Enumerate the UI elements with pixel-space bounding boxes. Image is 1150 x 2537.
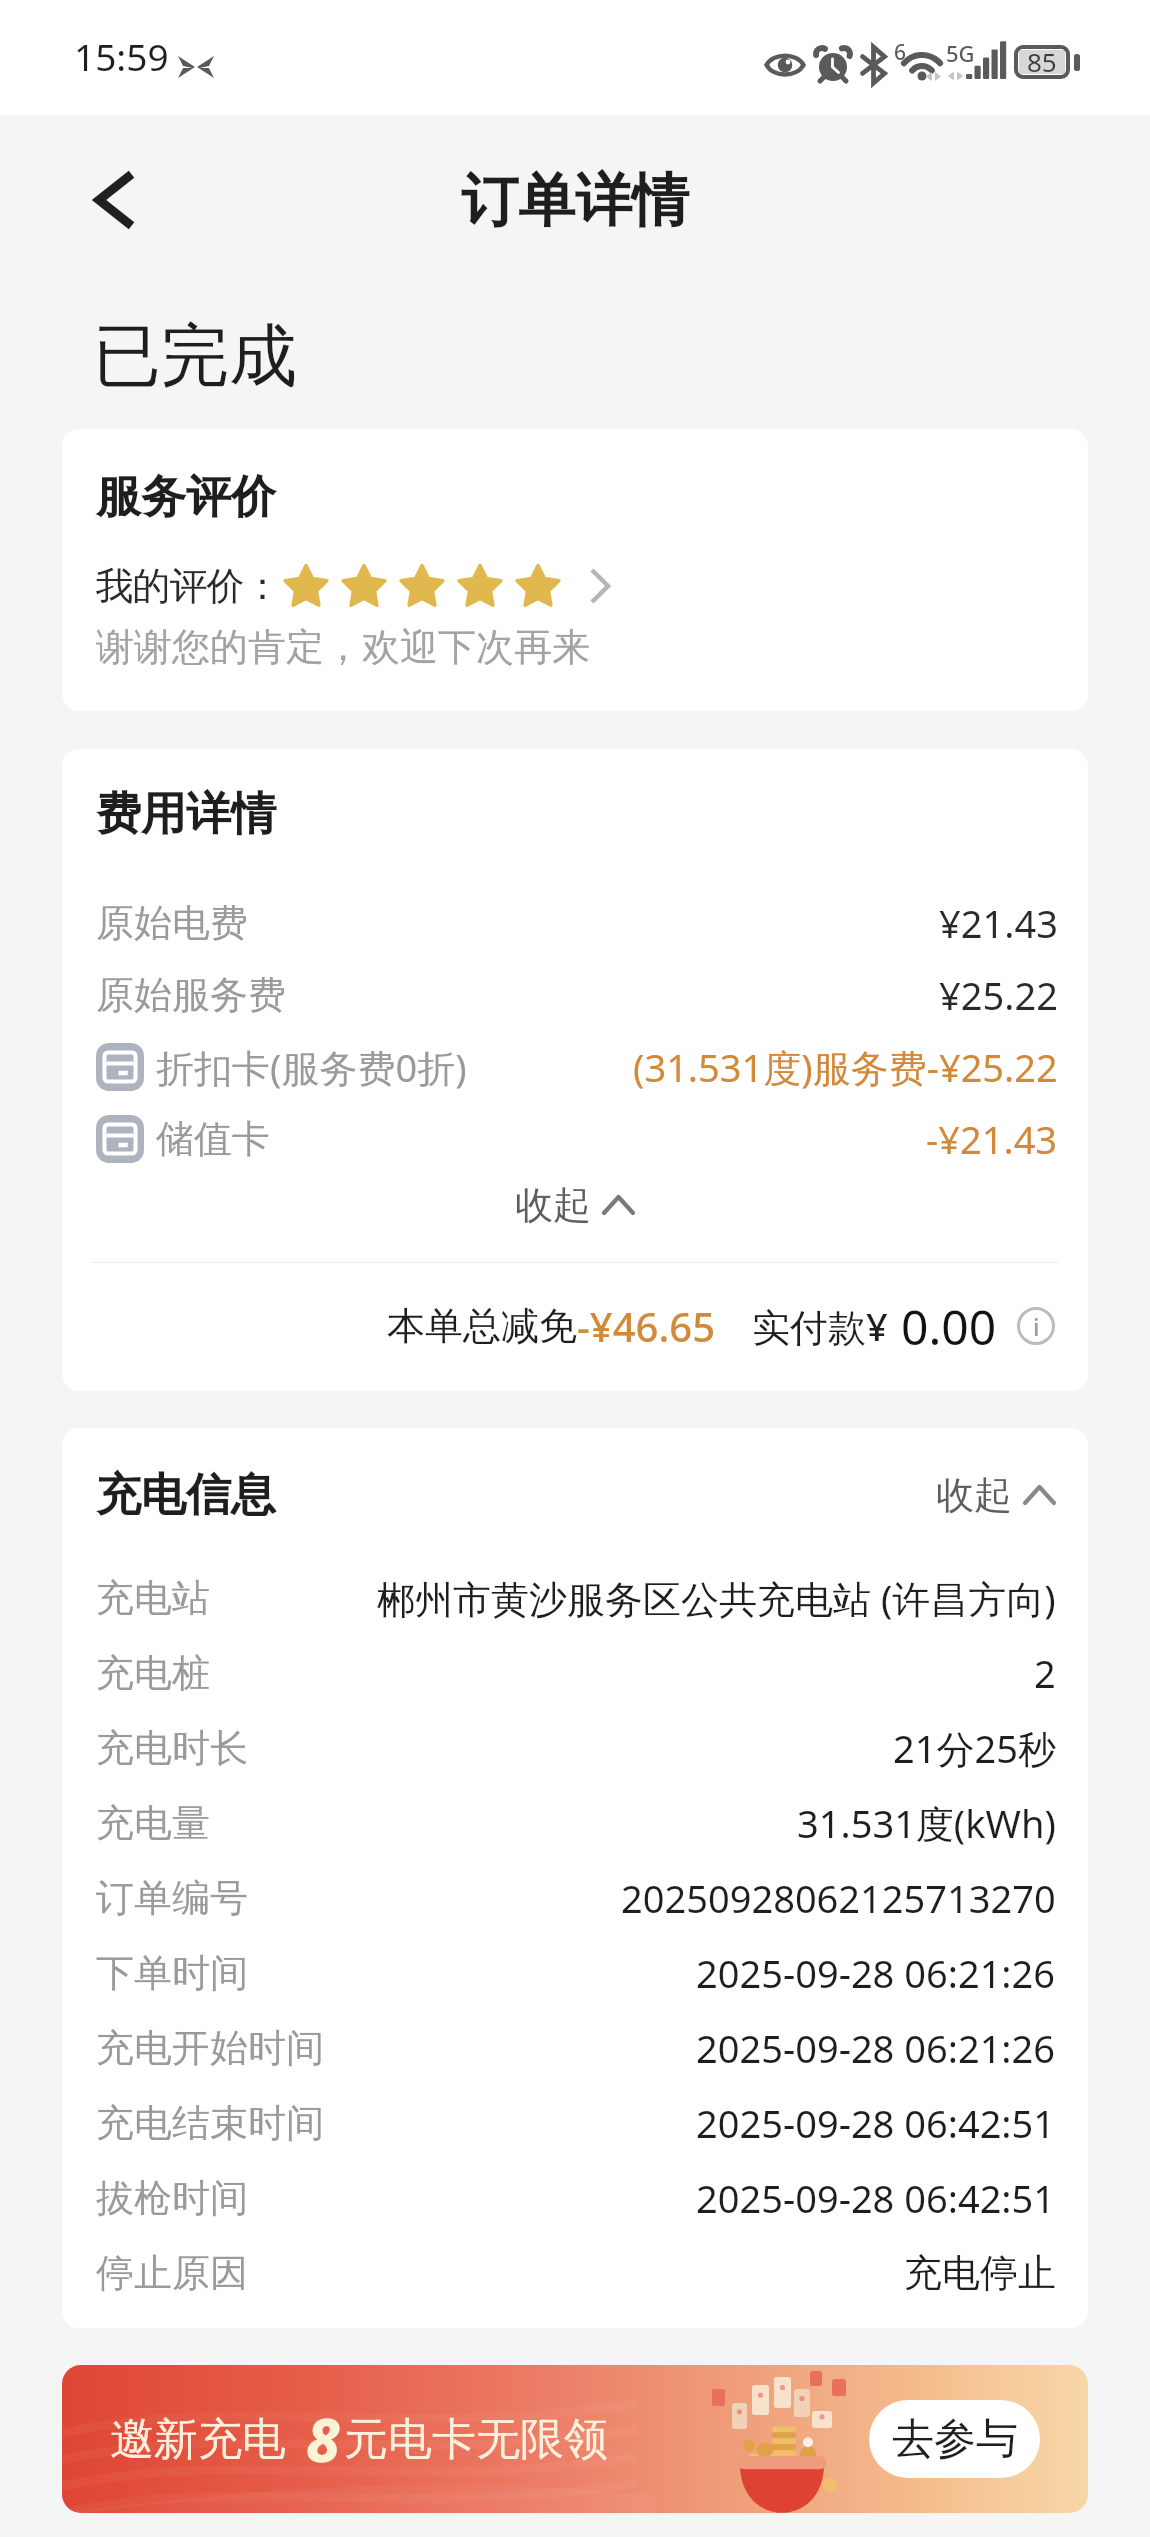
staticText: 下单时间 bbox=[96, 1949, 248, 1997]
staticText: 谢谢您的肯定，欢迎下次再来 bbox=[96, 623, 590, 671]
staticText: 15:59 bbox=[74, 31, 169, 81]
staticText: ¥21.43 bbox=[939, 897, 1058, 949]
staticText: 85 bbox=[1027, 44, 1057, 78]
staticText: 订单编号 bbox=[96, 1874, 248, 1922]
staticText: 充电站 bbox=[96, 1574, 210, 1622]
staticText: 收起 bbox=[936, 1471, 1012, 1519]
staticText: 原始服务费 bbox=[96, 971, 286, 1019]
button[interactable]: 邀新充电 bbox=[62, 2365, 1088, 2513]
staticText: 2025-09-28 06:21:26 bbox=[696, 1947, 1056, 1999]
staticText: 20250928062125713270 bbox=[621, 1872, 1056, 1924]
staticText: 充电桩 bbox=[96, 1649, 210, 1697]
staticText: 充电信息 bbox=[96, 1467, 276, 1524]
staticText: 6 bbox=[894, 38, 907, 67]
button[interactable]: 收起 bbox=[936, 1465, 1056, 1525]
staticText: i bbox=[1033, 1310, 1040, 1343]
staticText: 停止原因 bbox=[96, 2249, 248, 2297]
staticText: 我的评价： bbox=[96, 562, 281, 610]
staticText: 郴州市黄沙服务区公共充电站 (许昌方向) bbox=[377, 1572, 1056, 1624]
staticText: ¥25.22 bbox=[939, 969, 1058, 1021]
staticText: 折扣卡(服务费0折) bbox=[156, 1041, 467, 1093]
staticText: 拔枪时间 bbox=[96, 2174, 248, 2222]
button[interactable]: 我的评价： bbox=[62, 549, 1088, 623]
staticText: 充电量 bbox=[96, 1799, 210, 1847]
button[interactable]: 收起 bbox=[62, 1169, 1088, 1241]
staticText: (31.531度)服务费-¥25.22 bbox=[633, 1041, 1058, 1093]
staticText: 充电时长 bbox=[96, 1724, 248, 1772]
staticText: 2025-09-28 06:21:26 bbox=[696, 2022, 1056, 2074]
staticText: 8 bbox=[306, 2398, 340, 2480]
staticText: -¥46.65 bbox=[577, 1299, 716, 1353]
staticText: 2025-09-28 06:42:51 bbox=[696, 2172, 1056, 2224]
staticText: 已完成 bbox=[93, 314, 297, 400]
staticText: 5G bbox=[946, 38, 975, 68]
button[interactable]: Payment info bbox=[1017, 1307, 1055, 1345]
staticText: 充电停止 bbox=[904, 2249, 1056, 2297]
staticText: 21分25秒 bbox=[893, 1722, 1056, 1774]
staticText: 充电结束时间 bbox=[96, 2099, 324, 2147]
staticText: 邀新充电 bbox=[110, 2412, 286, 2467]
staticText: -¥21.43 bbox=[926, 1113, 1058, 1165]
staticText: 2025-09-28 06:42:51 bbox=[696, 2097, 1056, 2149]
staticText: 订单详情 bbox=[461, 165, 689, 237]
staticText: 收起 bbox=[515, 1181, 591, 1229]
staticText: 服务评价 bbox=[96, 469, 276, 526]
button[interactable]: 去参与 bbox=[869, 2400, 1040, 2478]
staticText: 0.00 bbox=[901, 1294, 997, 1359]
staticText: 费用详情 bbox=[96, 786, 276, 843]
staticText: 本单总减免 bbox=[387, 1302, 577, 1350]
staticText: 元电卡无限领 bbox=[344, 2412, 608, 2467]
button[interactable]: Back bbox=[58, 145, 168, 255]
staticText: 充电开始时间 bbox=[96, 2024, 324, 2072]
staticText: 2 bbox=[1034, 1647, 1056, 1699]
staticText: 31.531度(kWh) bbox=[797, 1797, 1056, 1849]
staticText: 储值卡 bbox=[156, 1115, 270, 1163]
staticText: 实付款¥ bbox=[752, 1300, 888, 1352]
staticText: 原始电费 bbox=[96, 899, 248, 947]
staticText: 去参与 bbox=[892, 2413, 1018, 2466]
